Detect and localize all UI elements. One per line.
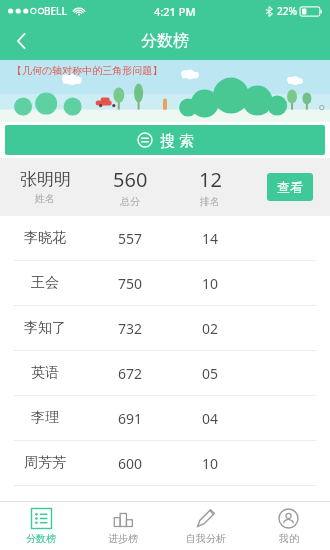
button[interactable]: 自我分析 <box>164 502 247 550</box>
staticText: 22% <box>277 4 297 18</box>
staticText: 张明明 <box>20 169 71 190</box>
button[interactable]: 张明明 <box>0 158 330 216</box>
staticText: 10 <box>202 454 219 473</box>
button[interactable]: 李晓花 <box>0 216 330 261</box>
staticText: 排名 <box>200 195 220 208</box>
staticText: 李理 <box>31 409 59 427</box>
staticText: 搜 索 <box>160 130 194 150</box>
button[interactable]: Back <box>0 22 42 60</box>
staticText: 560 <box>113 166 148 193</box>
staticText: 02 <box>202 319 219 338</box>
staticText: 732 <box>118 319 143 338</box>
staticText: 04 <box>202 409 219 428</box>
staticText: 分数榜 <box>141 31 189 51</box>
staticText: 691 <box>118 409 143 428</box>
staticText: 王会 <box>31 274 59 292</box>
staticText: 4:21 PM <box>154 4 196 19</box>
staticText: 李知了 <box>24 319 66 337</box>
staticText: 查看 <box>277 179 303 195</box>
button[interactable]: 王会 <box>0 261 330 306</box>
staticText: 750 <box>118 274 143 293</box>
button[interactable]: 李知了 <box>0 306 330 351</box>
staticText: 姓名 <box>35 192 55 205</box>
staticText: 总分 <box>120 195 140 208</box>
staticText: 557 <box>118 229 143 248</box>
button[interactable]: 李理 <box>0 396 330 441</box>
staticText: 14 <box>202 229 219 248</box>
staticText: 05 <box>202 364 219 383</box>
staticText: 672 <box>118 364 143 383</box>
button[interactable]: 搜 索 <box>5 125 325 155</box>
staticText: 12 <box>199 166 222 193</box>
staticText: 自我分析 <box>186 532 226 545</box>
staticText: 分数榜 <box>26 532 56 545</box>
button[interactable]: 查看 <box>267 173 313 201</box>
staticText: 周芳芳 <box>24 454 66 472</box>
button[interactable]: 周芳芳 <box>0 441 330 486</box>
button[interactable]: 分数榜 <box>0 502 82 550</box>
staticText: BELL <box>44 4 67 18</box>
button[interactable]: 进步榜 <box>82 502 164 550</box>
staticText: 我的 <box>279 532 299 545</box>
staticText: 李晓花 <box>24 229 66 247</box>
staticText: 10 <box>202 274 219 293</box>
staticText: 英语 <box>31 364 59 382</box>
staticText: 【几何の轴对称中的三角形问题】 <box>12 64 163 77</box>
staticText: 600 <box>118 454 143 473</box>
staticText: 进步榜 <box>108 532 138 545</box>
button[interactable]: 我的 <box>247 502 330 550</box>
button[interactable]: 英语 <box>0 351 330 396</box>
